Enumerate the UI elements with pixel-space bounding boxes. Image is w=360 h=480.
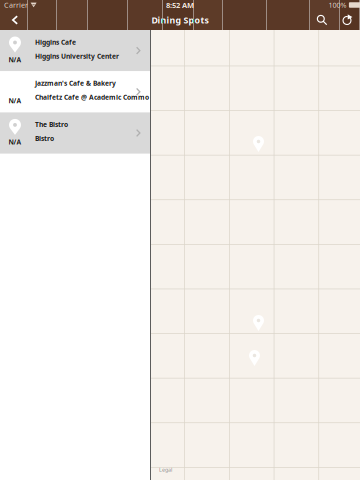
button[interactable]: N/A — [0, 30, 150, 71]
staticText: Jazzman's Cafe & Bakery — [35, 79, 116, 88]
staticText: Higgins University Center — [35, 51, 119, 61]
staticText: Legal — [159, 466, 172, 473]
staticText: Dining Spots — [151, 14, 208, 26]
button[interactable]: Search — [309, 10, 335, 30]
button[interactable]: N/A — [0, 112, 150, 154]
button[interactable]: Back — [1, 10, 29, 30]
staticText: Bistro — [35, 134, 54, 143]
staticText: N/A — [8, 96, 21, 105]
staticText: Higgins Cafe — [35, 37, 76, 47]
staticText: Chaifetz Cafe @ Academic Commo — [35, 93, 149, 102]
button[interactable]: N/A — [0, 71, 150, 112]
staticText: 100% — [328, 0, 346, 10]
staticText: N/A — [8, 55, 21, 64]
staticText: The Bistro — [35, 120, 68, 129]
button[interactable]: Refresh — [334, 10, 360, 30]
staticText: 8:52 AM — [166, 0, 194, 10]
staticText: N/A — [8, 137, 21, 146]
staticText: Carrier — [4, 0, 28, 10]
